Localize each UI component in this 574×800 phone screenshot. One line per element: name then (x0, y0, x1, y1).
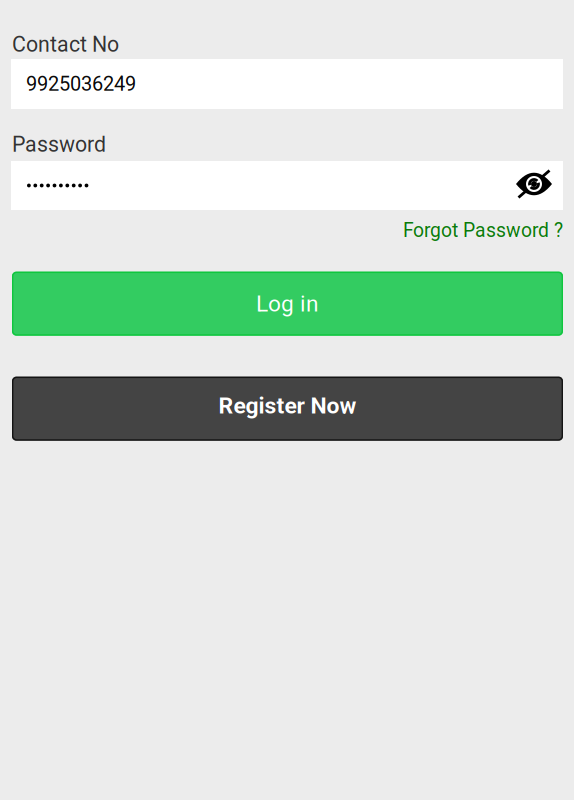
staticText: Contact No (12, 32, 119, 57)
staticText: Register Now (218, 392, 356, 419)
button[interactable]: Forgot Password ? (403, 219, 563, 242)
staticText: Log in (256, 290, 319, 317)
staticText: Password (12, 132, 106, 157)
button[interactable]: Hide password (511, 161, 557, 210)
button[interactable]: 9925036249 (11, 59, 563, 109)
staticText: Forgot Password ? (403, 219, 563, 242)
button[interactable]: Log in (12, 272, 563, 336)
button[interactable]: Register Now (12, 377, 563, 441)
staticText: 9925036249 (26, 72, 136, 96)
